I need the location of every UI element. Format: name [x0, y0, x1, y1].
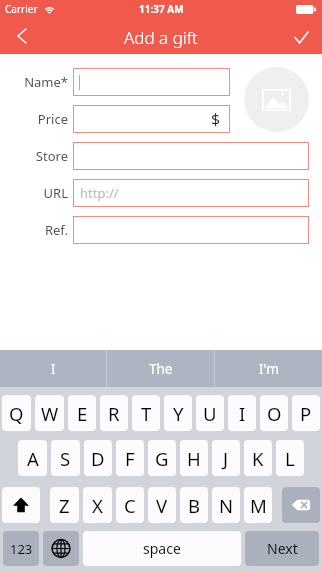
button[interactable]: Backspace — [282, 487, 320, 523]
button[interactable]: Add photo — [244, 67, 309, 132]
button[interactable]: J — [212, 440, 240, 476]
staticText: H — [187, 446, 201, 471]
staticText: T — [141, 401, 152, 426]
button[interactable]: Shift — [2, 487, 40, 523]
staticText: G — [155, 446, 169, 471]
staticText: F — [125, 446, 135, 471]
button[interactable]: I — [0, 350, 106, 387]
button[interactable]: A — [18, 440, 47, 476]
button[interactable]: P — [292, 395, 320, 431]
staticText: A — [27, 446, 39, 471]
staticText: space — [143, 539, 181, 558]
button[interactable]: N — [212, 487, 240, 523]
button[interactable]: E — [68, 395, 96, 431]
button[interactable] — [73, 142, 309, 170]
staticText: P — [300, 401, 312, 426]
staticText: R — [108, 401, 120, 426]
button[interactable]: D — [84, 440, 112, 476]
staticText: $ — [211, 108, 221, 130]
button[interactable]: S — [51, 440, 80, 476]
button[interactable] — [73, 68, 230, 96]
button[interactable]: G — [148, 440, 176, 476]
staticText: W — [41, 401, 59, 426]
button[interactable]: F — [116, 440, 144, 476]
staticText: Ref. — [44, 221, 68, 239]
button[interactable]: U — [196, 395, 224, 431]
staticText: K — [252, 446, 264, 471]
staticText: U — [203, 401, 217, 426]
staticText: Z — [59, 493, 70, 518]
button[interactable]: B — [180, 487, 208, 523]
staticText: Carrier — [5, 2, 38, 16]
staticText: Store — [35, 147, 68, 165]
staticText: D — [91, 446, 105, 471]
button[interactable]: X — [83, 487, 112, 523]
button[interactable]: I'm — [215, 350, 322, 387]
staticText: E — [77, 401, 88, 426]
staticText: Add a gift — [124, 26, 198, 49]
button[interactable]: H — [180, 440, 208, 476]
staticText: L — [285, 446, 295, 471]
button[interactable]: $ — [73, 105, 230, 133]
button[interactable]: V — [148, 487, 176, 523]
button[interactable]: space — [83, 531, 241, 566]
staticText: V — [156, 493, 168, 518]
staticText: http:// — [80, 184, 119, 202]
staticText: X — [92, 493, 103, 518]
staticText: 123 — [10, 540, 33, 558]
button[interactable]: Z — [50, 487, 79, 523]
button[interactable]: Done — [278, 20, 322, 54]
button[interactable] — [73, 216, 309, 244]
button[interactable]: Switch keyboard — [43, 531, 79, 566]
staticText: 11:37 AM — [139, 2, 184, 16]
staticText: O — [267, 401, 282, 426]
button[interactable]: Next — [245, 531, 319, 566]
button[interactable]: C — [116, 487, 144, 523]
button[interactable]: Back — [0, 20, 44, 54]
staticText: S — [60, 446, 71, 471]
staticText: Next — [267, 539, 298, 558]
staticText: C — [124, 493, 136, 518]
staticText: N — [219, 493, 234, 518]
button[interactable]: Y — [164, 395, 192, 431]
button[interactable]: http:// — [73, 179, 309, 207]
button[interactable]: L — [276, 440, 304, 476]
button[interactable]: M — [244, 487, 272, 523]
staticText: J — [223, 446, 229, 471]
staticText: The — [149, 360, 173, 378]
staticText: I'm — [259, 360, 279, 378]
staticText: Q — [9, 401, 24, 426]
staticText: B — [188, 493, 201, 518]
staticText: I — [51, 360, 56, 378]
staticText: Price — [37, 110, 68, 128]
staticText: M — [250, 493, 267, 518]
button[interactable]: K — [244, 440, 272, 476]
button[interactable]: I — [228, 395, 256, 431]
staticText: Name* — [24, 73, 68, 91]
staticText: Y — [173, 401, 184, 426]
button[interactable]: O — [260, 395, 288, 431]
staticText: I — [239, 401, 246, 426]
button[interactable]: R — [100, 395, 128, 431]
button[interactable]: W — [35, 395, 64, 431]
staticText: URL — [43, 184, 68, 202]
button[interactable]: T — [132, 395, 160, 431]
button[interactable]: The — [107, 350, 214, 387]
button[interactable]: Q — [2, 395, 31, 431]
button[interactable]: 123 — [3, 531, 39, 566]
